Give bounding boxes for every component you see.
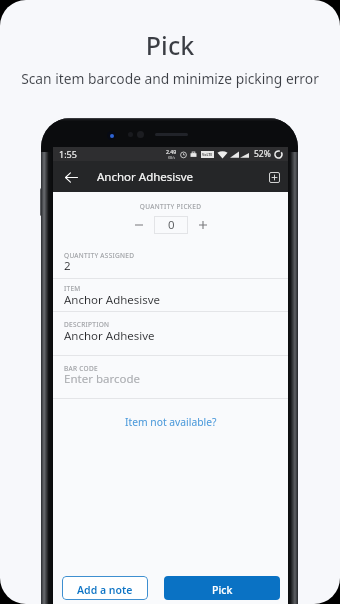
button[interactable]: Increase quantity [194, 216, 212, 234]
staticText: Pick [212, 583, 233, 597]
staticText: Anchor Adhesive [64, 328, 155, 344]
staticText: 0 [168, 217, 175, 233]
staticText: VoLTE [202, 152, 213, 157]
staticText: QUANTITY PICKED [53, 202, 288, 211]
button[interactable]: Add a note [62, 576, 148, 600]
staticText: Enter barcode [64, 371, 140, 387]
staticText: Item not available? [125, 415, 217, 429]
staticText: Add a note [77, 583, 133, 597]
button[interactable]: Decrease quantity [130, 216, 148, 234]
staticText: 2 [64, 258, 71, 274]
button[interactable]: Item not available? [53, 413, 288, 430]
staticText: KB/s [168, 155, 176, 160]
staticText: 52% [254, 148, 271, 160]
button[interactable]: Pick [164, 576, 280, 600]
staticText: 1:55 [59, 148, 77, 160]
button[interactable]: Add item [265, 168, 283, 186]
staticText: Anchor Adhesisve [97, 169, 194, 185]
staticText: DESCRIPTION [64, 320, 110, 329]
staticText: Anchor Adhesisve [64, 292, 161, 308]
staticText: Scan item barcode and minimize picking e… [0, 69, 340, 88]
staticText: 2.49 [166, 148, 177, 155]
staticText: ITEM [64, 284, 81, 293]
staticText: BAR CODE [64, 364, 98, 373]
button[interactable]: Back [62, 168, 80, 186]
staticText: Pick [0, 28, 340, 62]
staticText: QUANTITY ASSIGNED [64, 251, 135, 260]
